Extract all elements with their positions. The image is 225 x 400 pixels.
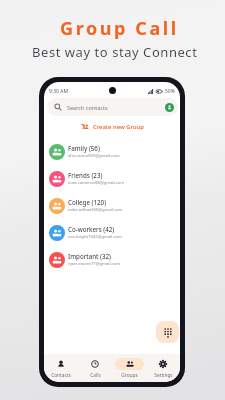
staticText: Family (56) — [68, 144, 100, 152]
button[interactable]: Important (32) — [44, 246, 180, 273]
staticText: Settings — [154, 372, 173, 379]
staticText: mike.willow360@gmail.com — [68, 207, 123, 213]
staticText: 9:30 AM — [49, 88, 68, 95]
button[interactable]: Create new Group — [44, 119, 180, 134]
button[interactable]: Dialpad — [156, 321, 179, 343]
staticText: Group Call — [60, 16, 179, 41]
staticText: Co-workers (42) — [68, 225, 115, 233]
button[interactable]: Family (56) — [44, 138, 180, 165]
staticText: Groups — [121, 372, 138, 379]
staticText: Create new Group — [93, 123, 144, 131]
staticText: Important (32) — [68, 252, 111, 260]
staticText: Calls — [90, 372, 101, 379]
button[interactable]: Co-workers (42) — [44, 219, 180, 246]
button[interactable]: Groups — [112, 354, 146, 382]
staticText: Contacts — [51, 372, 71, 379]
staticText: Best way to stay Connect — [32, 43, 198, 61]
button[interactable]: Contacts — [44, 354, 78, 382]
staticText: luna.cameron88@gmail.com — [68, 180, 125, 186]
button[interactable]: Search contacts — [47, 98, 178, 116]
staticText: 50% — [165, 88, 175, 95]
button[interactable]: Calls — [78, 354, 112, 382]
button[interactable]: Friends (23) — [44, 165, 180, 192]
staticText: Search contacts — [67, 104, 108, 111]
button[interactable]: Settings — [146, 354, 180, 382]
button[interactable]: College (120) — [44, 192, 180, 219]
staticText: College (120) — [68, 198, 107, 206]
staticText: alex.stone907@gmail.com — [68, 153, 120, 159]
staticText: Friends (23) — [68, 171, 103, 179]
staticText: ryan.moore77@gmail.com — [68, 261, 121, 267]
staticText: zoe.bright1042@gmail.com — [68, 234, 122, 240]
